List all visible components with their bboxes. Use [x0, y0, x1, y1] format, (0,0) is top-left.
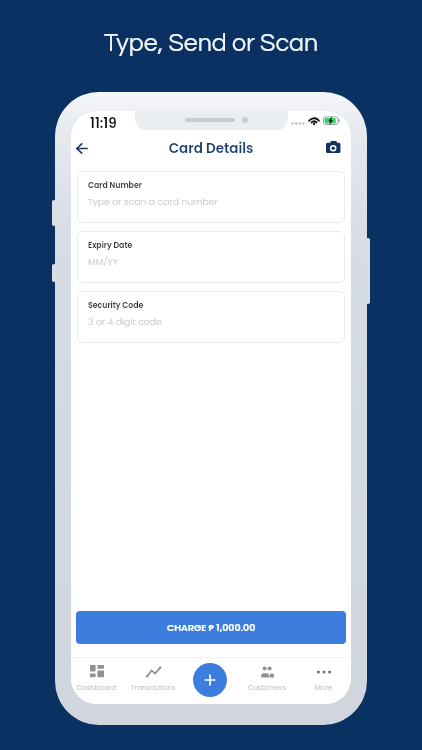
button[interactable]: Expiry Date — [77, 231, 345, 283]
staticText: 3 or 4 digit code — [88, 315, 162, 328]
staticText: CHARGE ₱ 1,000.00 — [167, 621, 256, 634]
staticText: Expiry Date — [88, 240, 133, 251]
button[interactable]: Card Number — [77, 171, 345, 223]
button[interactable]: Security Code — [77, 291, 345, 343]
staticText: More — [315, 683, 333, 693]
staticText: Security Code — [88, 300, 144, 311]
button[interactable]: Add — [193, 663, 227, 697]
button[interactable]: CHARGE ₱ 1,000.00 — [76, 611, 346, 644]
button[interactable]: Scan card with camera — [320, 136, 345, 157]
staticText: MM/YY — [88, 255, 118, 268]
staticText: 11:19 — [90, 114, 117, 133]
button[interactable]: Customers — [239, 657, 295, 704]
staticText: Transactions — [131, 683, 176, 693]
staticText: Customers — [248, 683, 286, 693]
button[interactable]: More — [296, 657, 351, 704]
staticText: Type, Send or Scan — [0, 30, 422, 56]
staticText: Type or scan a card number — [88, 195, 218, 208]
staticText: Card Number — [88, 180, 142, 191]
staticText: Dashboard — [77, 683, 116, 693]
staticText: Card Details — [71, 139, 351, 158]
button[interactable]: Back — [71, 138, 92, 159]
button[interactable]: Dashboard — [71, 657, 124, 704]
button[interactable]: Transactions — [125, 657, 181, 704]
